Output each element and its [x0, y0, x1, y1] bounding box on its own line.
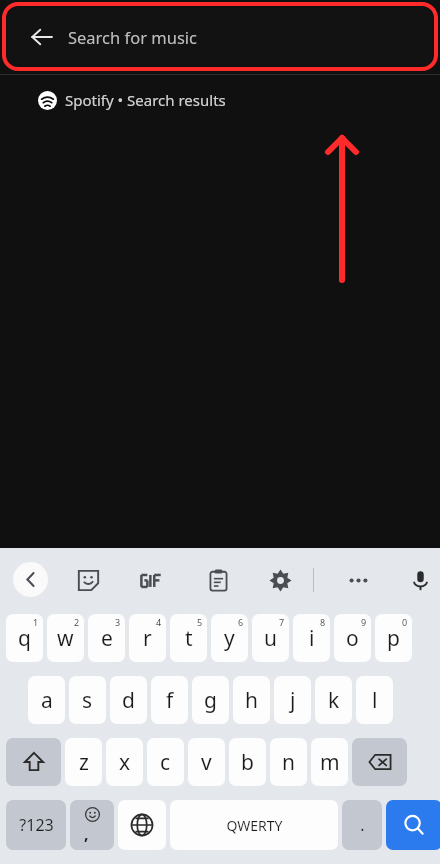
- button[interactable]: a: [28, 676, 65, 724]
- button[interactable]: ?123: [6, 800, 66, 850]
- button[interactable]: GIF: [133, 562, 169, 598]
- button[interactable]: ,: [70, 800, 114, 850]
- button[interactable]: x: [106, 738, 143, 786]
- staticText: t: [185, 624, 193, 653]
- button[interactable]: Collapse toolbar: [13, 562, 48, 597]
- staticText: q: [18, 624, 31, 653]
- staticText: p: [387, 624, 400, 653]
- staticText: m: [320, 748, 340, 777]
- staticText: w: [57, 624, 74, 653]
- staticText: .: [360, 814, 365, 836]
- button[interactable]: z: [65, 738, 102, 786]
- staticText: h: [245, 686, 258, 715]
- staticText: 8: [320, 616, 326, 628]
- button[interactable]: Back: [22, 17, 62, 57]
- button[interactable]: Stickers: [70, 562, 106, 598]
- staticText: 1: [33, 616, 39, 628]
- button[interactable]: j: [274, 676, 311, 724]
- staticText: y: [224, 624, 235, 653]
- button[interactable]: Language: [118, 800, 166, 850]
- button[interactable]: m: [311, 738, 348, 786]
- staticText: c: [160, 748, 171, 777]
- staticText: 3: [115, 616, 121, 628]
- button[interactable]: c: [147, 738, 184, 786]
- staticText: ,: [84, 823, 89, 845]
- button[interactable]: Voice input: [402, 562, 438, 598]
- staticText: r: [143, 624, 152, 653]
- button[interactable]: More options: [340, 562, 376, 598]
- staticText: o: [346, 624, 359, 653]
- staticText: u: [264, 624, 277, 653]
- button[interactable]: Backspace: [352, 738, 407, 786]
- staticText: i: [309, 624, 315, 653]
- staticText: Spotify • Search results: [65, 90, 226, 110]
- staticText: g: [204, 686, 217, 715]
- staticText: x: [119, 748, 131, 777]
- button[interactable]: QWERTY: [170, 800, 338, 850]
- button[interactable]: t: [170, 614, 207, 662]
- button[interactable]: f: [151, 676, 188, 724]
- staticText: f: [166, 686, 174, 715]
- staticText: QWERTY: [226, 816, 283, 835]
- staticText: n: [282, 748, 295, 777]
- button[interactable]: r: [129, 614, 166, 662]
- staticText: 2: [74, 616, 80, 628]
- staticText: 7: [279, 616, 285, 628]
- button[interactable]: s: [69, 676, 106, 724]
- button[interactable]: Settings: [262, 562, 298, 598]
- staticText: 5: [197, 616, 203, 628]
- button[interactable]: o: [334, 614, 371, 662]
- staticText: a: [41, 686, 53, 715]
- staticText: k: [328, 686, 340, 715]
- button[interactable]: Search: [386, 800, 440, 850]
- staticText: 4: [156, 616, 162, 628]
- staticText: 9: [361, 616, 367, 628]
- button[interactable]: e: [88, 614, 125, 662]
- staticText: ?123: [19, 814, 54, 836]
- button[interactable]: g: [192, 676, 229, 724]
- staticText: e: [101, 624, 113, 653]
- button[interactable]: l: [356, 676, 393, 724]
- staticText: 0: [402, 616, 408, 628]
- button[interactable]: u: [252, 614, 289, 662]
- staticText: Search for music: [68, 26, 197, 48]
- button[interactable]: .: [342, 800, 382, 850]
- button[interactable]: Clipboard: [200, 562, 236, 598]
- button[interactable]: d: [110, 676, 147, 724]
- button[interactable]: Back: [8, 8, 432, 65]
- staticText: d: [122, 686, 135, 715]
- staticText: v: [201, 748, 212, 777]
- button[interactable]: w: [47, 614, 84, 662]
- staticText: 6: [238, 616, 244, 628]
- staticText: b: [241, 748, 254, 777]
- button[interactable]: Shift: [6, 738, 61, 786]
- button[interactable]: n: [270, 738, 307, 786]
- button[interactable]: y: [211, 614, 248, 662]
- button[interactable]: b: [229, 738, 266, 786]
- button[interactable]: v: [188, 738, 225, 786]
- button[interactable]: h: [233, 676, 270, 724]
- staticText: j: [290, 686, 296, 715]
- button[interactable]: k: [315, 676, 352, 724]
- staticText: s: [82, 686, 93, 715]
- button[interactable]: q: [6, 614, 43, 662]
- staticText: l: [372, 686, 378, 715]
- button[interactable]: p: [375, 614, 412, 662]
- button[interactable]: i: [293, 614, 330, 662]
- staticText: z: [79, 748, 89, 777]
